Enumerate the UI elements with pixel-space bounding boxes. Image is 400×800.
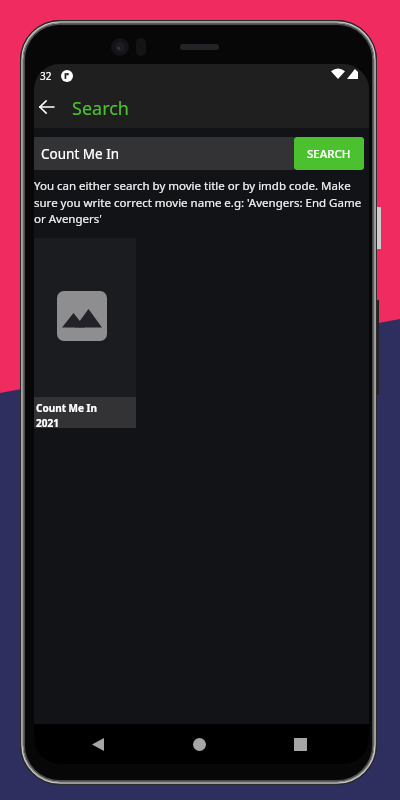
button[interactable]: SEARCH [294, 137, 364, 170]
button[interactable]: Back [82, 724, 114, 764]
staticText: 32 [40, 69, 52, 83]
staticText: 2021 [36, 416, 59, 428]
button[interactable]: Count Me In [34, 137, 294, 170]
button[interactable]: Back [34, 88, 59, 128]
staticText: You can either search by movie title or … [34, 178, 366, 226]
button[interactable]: Home [183, 724, 215, 764]
button[interactable]: Count Me In [34, 238, 136, 428]
button[interactable]: Recents [284, 724, 316, 764]
staticText: Count Me In [41, 145, 120, 163]
staticText: Count Me In [36, 401, 97, 415]
staticText: Search [72, 96, 129, 121]
staticText: SEARCH [307, 146, 351, 162]
